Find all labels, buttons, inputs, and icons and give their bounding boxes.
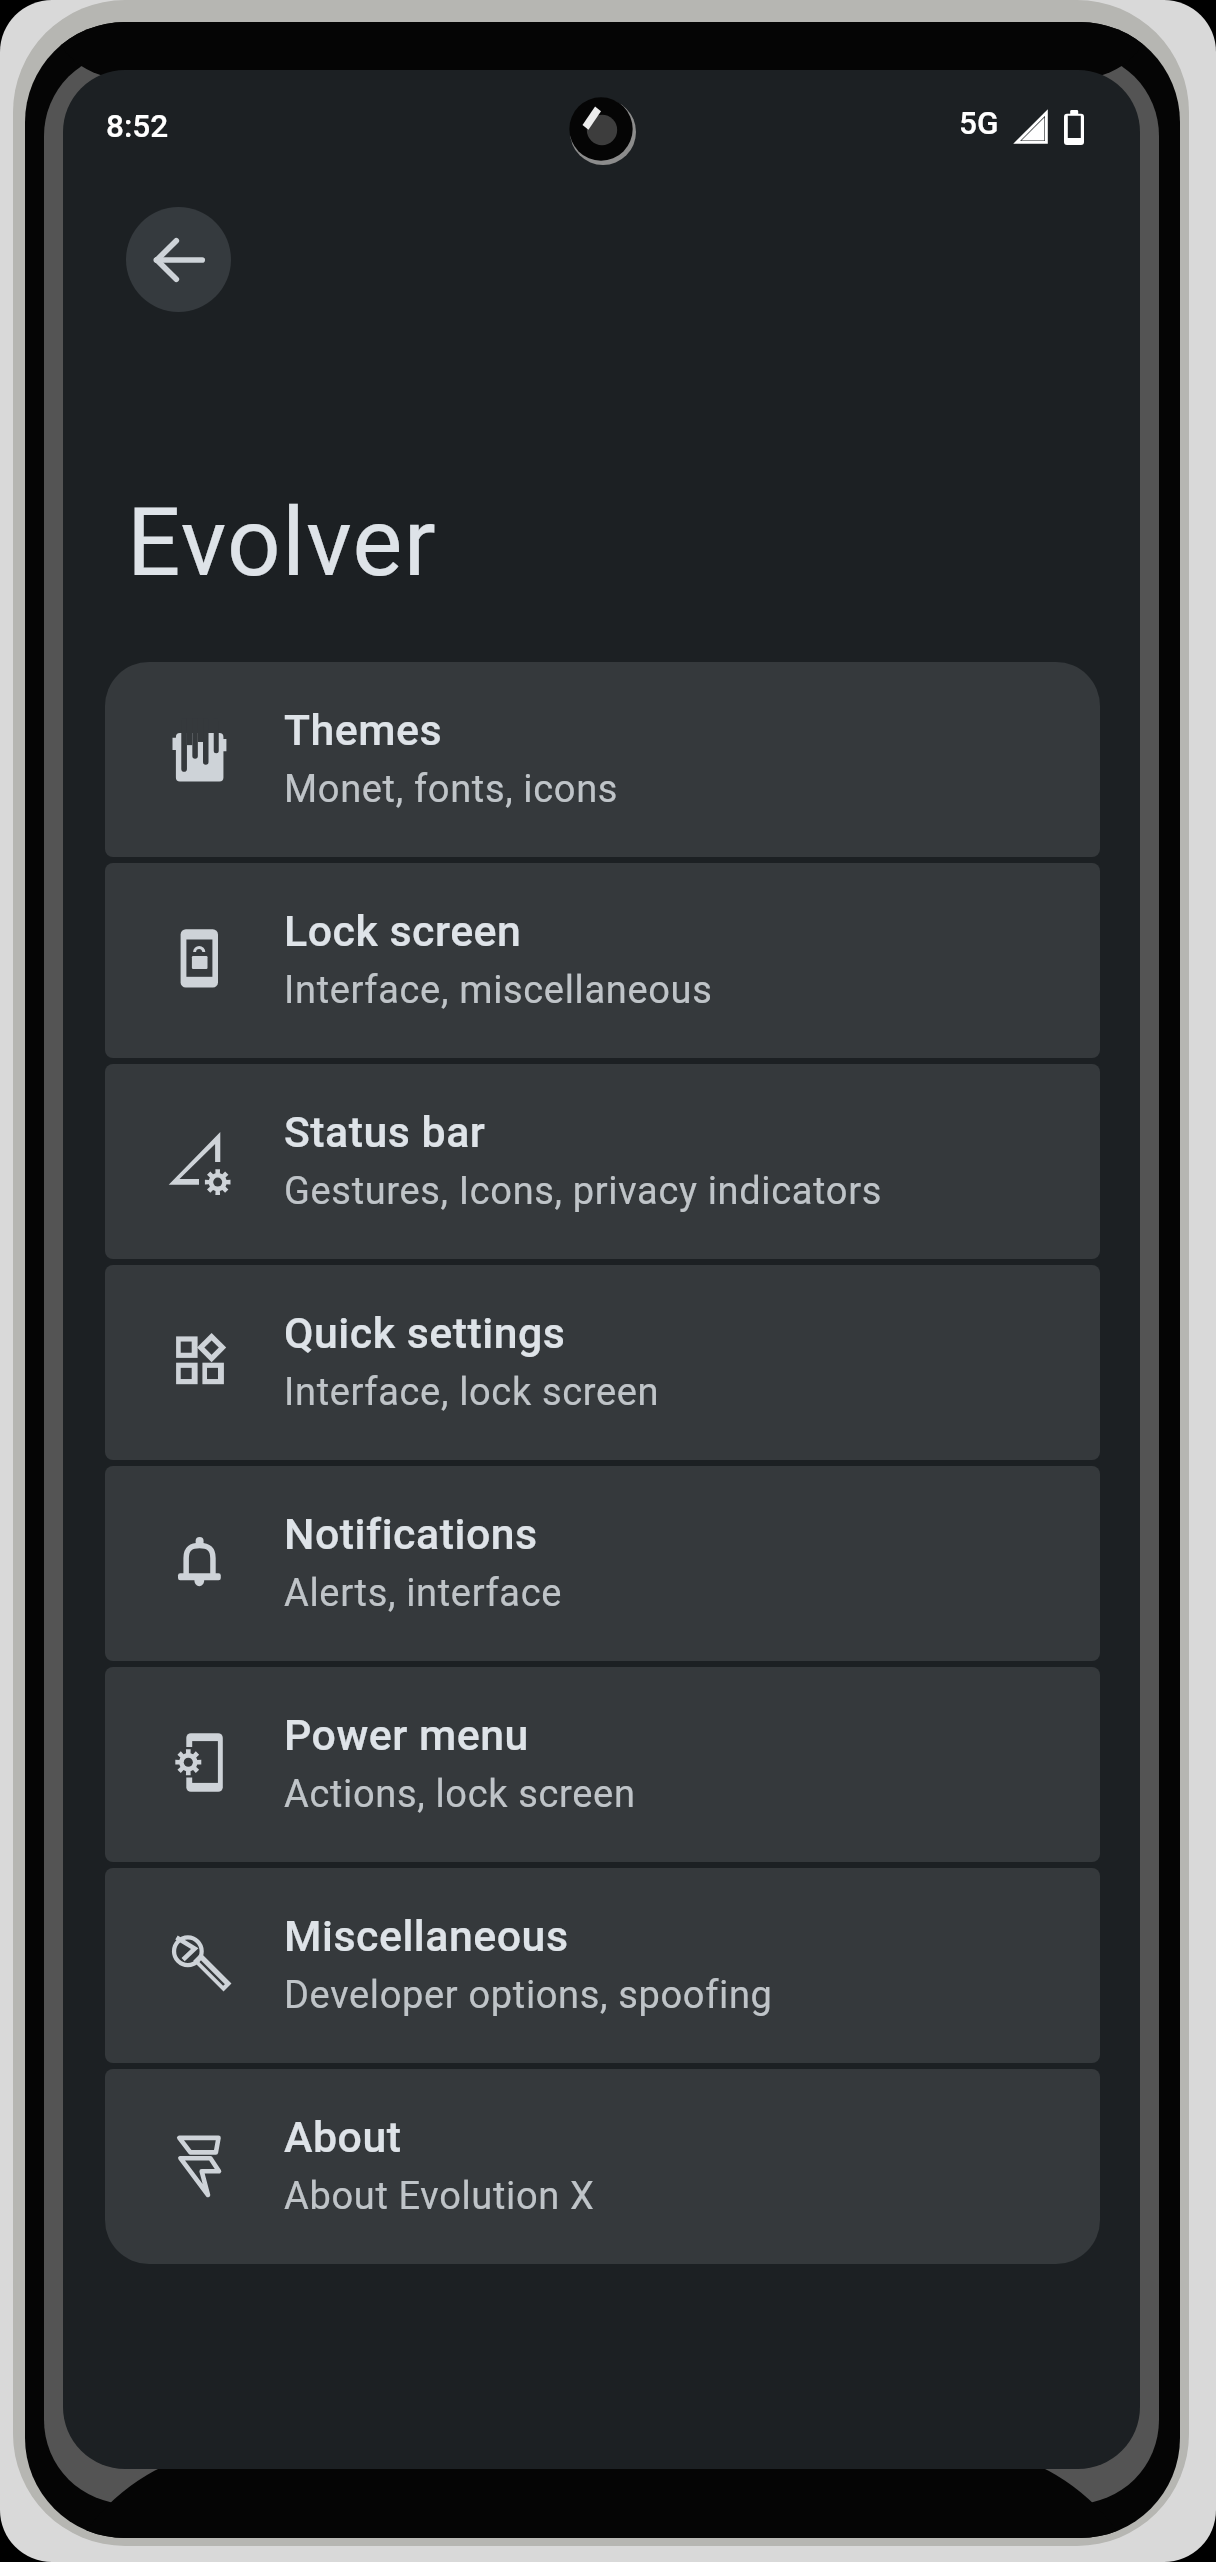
button[interactable]: Power menu [105,1667,1100,1862]
staticText: Developer options, spoofing [284,1973,773,2018]
staticText: 8:52 [106,108,169,145]
staticText: Power menu [284,1710,529,1760]
button[interactable]: Notifications [105,1466,1100,1661]
button[interactable]: Themes [105,662,1100,857]
staticText: Lock screen [284,906,522,956]
button[interactable]: Status bar [105,1064,1100,1259]
staticText: Interface, lock screen [284,1370,660,1415]
button[interactable]: Miscellaneous [105,1868,1100,2063]
staticText: Themes [284,705,443,755]
staticText: 5G [959,105,999,142]
button[interactable]: About [105,2069,1100,2264]
staticText: Gestures, Icons, privacy indicators [284,1169,882,1214]
staticText: About [284,2112,402,2162]
button[interactable]: Quick settings [105,1265,1100,1460]
staticText: Quick settings [284,1308,566,1358]
staticText: Alerts, interface [284,1571,563,1616]
staticText: Evolver [127,488,437,598]
staticText: Miscellaneous [284,1911,569,1961]
button[interactable]: Back [126,207,231,312]
button[interactable]: Lock screen [105,863,1100,1058]
staticText: Notifications [284,1509,538,1559]
staticText: Status bar [284,1107,486,1157]
staticText: About Evolution X [284,2174,595,2219]
staticText: Interface, miscellaneous [284,968,713,1013]
staticText: Actions, lock screen [284,1772,636,1817]
staticText: Monet, fonts, icons [284,767,619,812]
